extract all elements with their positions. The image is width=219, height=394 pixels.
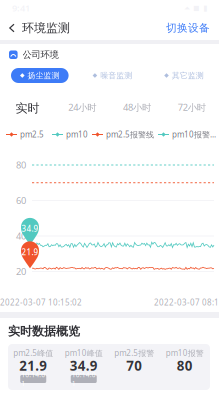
button[interactable]: 噪音监测 xyxy=(93,68,132,83)
staticText: 21.9 xyxy=(19,357,47,374)
staticText: 公司环境 xyxy=(23,49,59,60)
staticText: 40 xyxy=(16,230,26,242)
staticText: 72小时 xyxy=(178,101,206,113)
staticText: pm2.5报警线 xyxy=(106,129,154,140)
button[interactable]: 48小时 xyxy=(109,101,164,113)
staticText: 48小时 xyxy=(123,101,151,113)
staticText: 24小时 xyxy=(68,101,96,113)
staticText: 噪音监测 xyxy=(100,71,132,80)
button[interactable]: Back xyxy=(0,16,76,40)
button[interactable]: 72小时 xyxy=(164,101,219,113)
staticText: 扬尘监测 xyxy=(28,71,60,80)
staticText: pm10 xyxy=(66,129,88,140)
staticText: 34.9 xyxy=(70,357,98,374)
staticText: 环境监测 xyxy=(22,21,70,35)
staticText: pm2.5 xyxy=(20,129,44,140)
staticText: 70 xyxy=(126,357,142,374)
button[interactable]: 24小时 xyxy=(55,101,110,113)
staticText: pm10报警线 xyxy=(172,129,216,140)
staticText: 20 xyxy=(16,265,26,278)
staticText: pm2.5峰值 xyxy=(13,348,53,358)
staticText: 10:14:01 xyxy=(21,370,45,388)
button[interactable]: 扬尘监测 xyxy=(11,68,69,83)
button[interactable]: 实时 xyxy=(0,101,55,113)
staticText: 60 xyxy=(16,194,26,207)
staticText: 9:41 xyxy=(12,2,30,14)
staticText: 80 xyxy=(16,159,26,171)
staticText: pm10峰值 xyxy=(65,348,103,358)
staticText: 实时 xyxy=(15,101,39,113)
staticText: pm2.5报警 xyxy=(114,348,154,358)
staticText: 21.9 xyxy=(21,247,38,257)
staticText: 切换设备 xyxy=(166,21,210,34)
staticText: 80 xyxy=(177,357,193,374)
staticText: 34.9 xyxy=(21,223,38,234)
staticText: 实时数据概览 xyxy=(8,324,80,339)
staticText: 其它监测 xyxy=(172,71,204,80)
button[interactable]: 切换设备 xyxy=(160,16,219,40)
button[interactable]: 其它监测 xyxy=(164,68,204,83)
staticText: pm10报警 xyxy=(166,348,204,358)
staticText: 2022-03-07 10:15:02 xyxy=(0,297,82,308)
staticText: 2022-03-07 08:1 xyxy=(154,297,219,308)
staticText: ⏶ ◼ ▮ xyxy=(184,3,207,13)
staticText: 10:14:01 xyxy=(72,370,96,388)
